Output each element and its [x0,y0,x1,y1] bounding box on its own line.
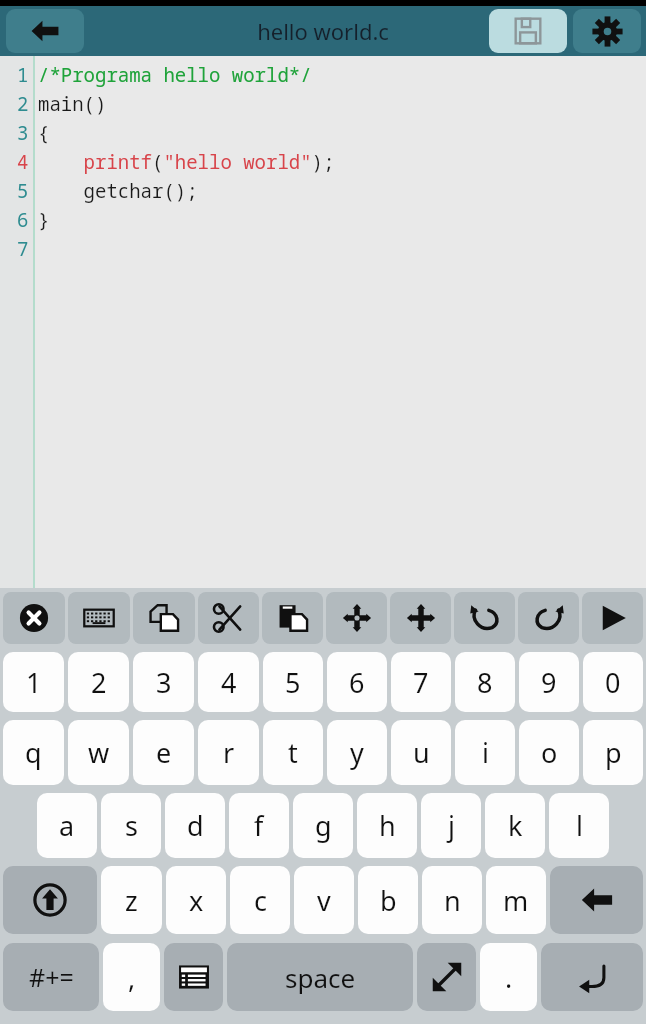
staticText: getchar(); [38,178,198,204]
staticText: f [254,807,264,844]
staticText: v [317,882,331,919]
button[interactable]: Keyboard [68,592,130,644]
button[interactable]: z [101,866,162,934]
staticText: 3 [156,664,172,701]
staticText: #+= [29,960,74,994]
staticText: 2 [17,91,29,117]
staticText: c [254,882,267,919]
button[interactable]: Save [489,9,567,53]
button[interactable]: Pan [390,592,451,644]
button[interactable]: 9 [519,652,579,712]
button[interactable]: Shift [3,866,97,934]
button[interactable]: Backspace [550,866,643,934]
staticText: e [156,734,172,771]
staticText: 5 [17,178,29,204]
button[interactable]: Close [3,592,65,644]
staticText: 1 [26,664,42,701]
button[interactable]: t [263,720,323,785]
button[interactable]: i [455,720,515,785]
staticText: 9 [541,664,557,701]
staticText: { [38,120,50,146]
button[interactable]: l [549,793,609,858]
button[interactable]: 4 [198,652,259,712]
button[interactable]: Run [582,592,643,644]
button[interactable]: 5 [263,652,323,712]
button[interactable]: y [327,720,387,785]
button[interactable]: s [101,793,161,858]
staticText: 2 [91,664,107,701]
staticText: r [223,734,235,771]
staticText: printf("hello world"); [38,149,335,175]
staticText: l [576,807,583,844]
button[interactable]: k [485,793,545,858]
button[interactable]: Move [326,592,387,644]
button[interactable]: 2 [68,652,129,712]
button[interactable]: 3 [133,652,194,712]
button[interactable]: m [486,866,546,934]
button[interactable]: w [68,720,129,785]
button[interactable]: q [3,720,64,785]
button[interactable]: r [198,720,259,785]
button[interactable]: 7 [391,652,451,712]
staticText: /*Programa hello world*/ [38,62,312,88]
staticText: g [315,807,332,844]
staticText: y [350,734,364,771]
button[interactable]: 0 [583,652,643,712]
staticText: n [444,882,461,919]
button[interactable]: 1 [3,652,64,712]
button[interactable]: e [133,720,194,785]
button[interactable]: a [37,793,97,858]
button[interactable]: f [229,793,289,858]
staticText: s [125,807,138,844]
staticText: 7 [413,664,429,701]
staticText: 6 [17,207,29,233]
staticText: x [189,882,204,919]
button[interactable]: Back [6,9,84,53]
button[interactable]: Cut [198,592,259,644]
staticText: u [413,734,430,771]
button[interactable]: b [358,866,418,934]
button[interactable]: space [227,943,413,1011]
button[interactable]: x [166,866,226,934]
button[interactable]: u [391,720,451,785]
staticText: 4 [17,149,29,175]
staticText: 0 [605,664,621,701]
button[interactable]: j [421,793,481,858]
staticText: 8 [477,664,493,701]
button[interactable]: Settings [573,9,641,53]
button[interactable]: , [103,943,160,1011]
button[interactable]: Copy [133,592,195,644]
button[interactable]: 8 [455,652,515,712]
staticText: o [541,734,558,771]
button[interactable]: d [165,793,225,858]
staticText: , [128,959,136,996]
button[interactable]: . [480,943,537,1011]
staticText: hello world.c [257,16,389,46]
button[interactable]: g [293,793,353,858]
staticText: m [503,882,529,919]
staticText: } [38,207,50,233]
staticText: k [508,807,523,844]
button[interactable]: Enter [541,943,643,1011]
staticText: 5 [285,664,301,701]
button[interactable]: p [583,720,643,785]
button[interactable]: n [422,866,482,934]
button[interactable]: Symbols [164,943,223,1011]
staticText: . [505,959,513,996]
button[interactable]: o [519,720,579,785]
staticText: main() [38,91,107,117]
button[interactable]: Undo [454,592,515,644]
staticText: z [125,882,138,919]
staticText: q [25,734,42,771]
staticText: 6 [349,664,365,701]
button[interactable]: c [230,866,290,934]
button[interactable]: h [357,793,417,858]
button[interactable]: v [294,866,354,934]
button[interactable]: Paste [262,592,323,644]
button[interactable]: 6 [327,652,387,712]
button[interactable]: Redo [518,592,579,644]
staticText: j [448,807,455,844]
staticText: w [88,734,110,771]
button[interactable]: #+= [3,943,99,1011]
button[interactable]: Resize [417,943,476,1011]
